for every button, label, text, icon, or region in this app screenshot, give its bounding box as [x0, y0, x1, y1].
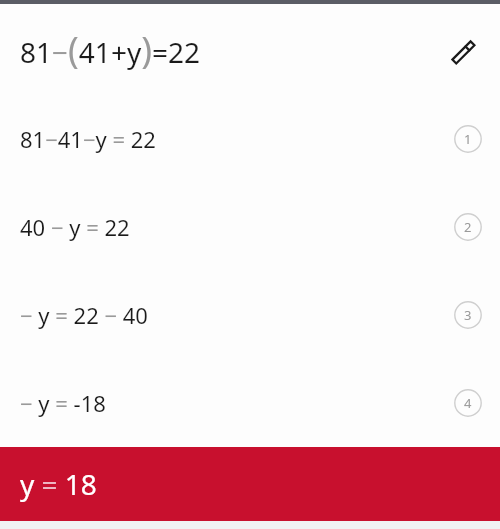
staticText: y = 18: [20, 465, 97, 503]
staticText: 3: [464, 306, 472, 324]
button[interactable]: 40 − y = 22: [0, 183, 500, 271]
button[interactable]: Edit equation: [442, 30, 482, 70]
button[interactable]: Step 3: [454, 301, 482, 329]
button[interactable]: y = 18: [0, 447, 500, 521]
staticText: 4: [464, 394, 472, 412]
button[interactable]: − y = 22 − 40: [0, 271, 500, 359]
staticText: − y = 22 − 40: [20, 300, 148, 330]
button[interactable]: − y = -18: [0, 359, 500, 447]
staticText: 81−(41+y)=22: [20, 25, 201, 74]
staticText: 1: [464, 130, 472, 148]
staticText: 40 − y = 22: [20, 212, 130, 242]
staticText: 81−41−y = 22: [20, 124, 156, 154]
button[interactable]: 81−41−y = 22: [0, 95, 500, 183]
button[interactable]: Step 4: [454, 389, 482, 417]
button[interactable]: Step 2: [454, 213, 482, 241]
staticText: 2: [464, 218, 472, 236]
button[interactable]: Step 1: [454, 125, 482, 153]
staticText: − y = -18: [20, 388, 106, 418]
